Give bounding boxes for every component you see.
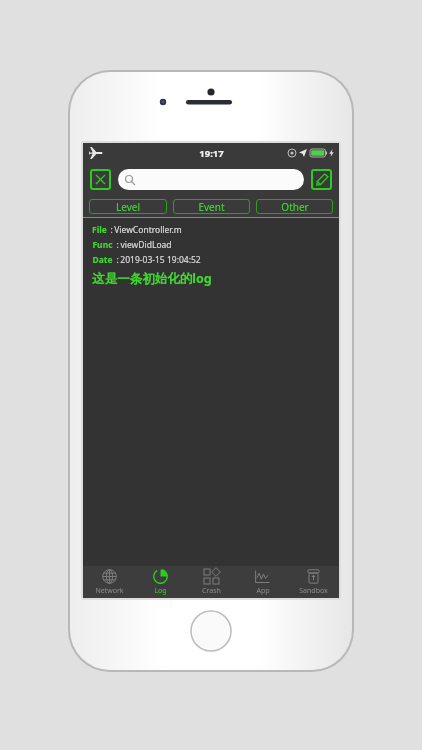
button[interactable]: Network (83, 566, 135, 598)
staticText: Func (92, 239, 113, 251)
button[interactable]: Sandbox (288, 566, 339, 598)
staticText: Event (198, 200, 225, 214)
staticText: Sandbox (299, 586, 328, 596)
staticText: Date (92, 254, 113, 266)
staticText: 这是一条初始化的log (92, 270, 212, 287)
button[interactable]: Crash (186, 566, 237, 598)
staticText: Level (116, 200, 140, 214)
button[interactable]: Log (135, 566, 186, 598)
staticText: App (256, 586, 270, 596)
button[interactable]: File (83, 218, 339, 287)
staticText: 19:17 (199, 147, 224, 160)
staticText: Log (154, 586, 167, 596)
staticText: File (92, 224, 107, 236)
button[interactable]: App (237, 566, 288, 598)
staticText: : (107, 224, 114, 236)
staticText: Network (95, 586, 124, 596)
button[interactable]: Level (89, 199, 167, 214)
staticText: ViewController.m (114, 224, 182, 236)
button[interactable]: Compose (311, 169, 332, 190)
staticText: Other (281, 200, 309, 214)
button[interactable]: Clear (90, 169, 111, 190)
staticText: viewDidLoad (120, 239, 172, 251)
button[interactable]: Event (173, 199, 250, 214)
staticText: : (113, 254, 120, 266)
button[interactable] (118, 169, 304, 190)
staticText: 2019-03-15 19:04:52 (120, 254, 201, 266)
staticText: : (113, 239, 120, 251)
button[interactable]: Other (256, 199, 333, 214)
staticText: Crash (202, 586, 221, 596)
